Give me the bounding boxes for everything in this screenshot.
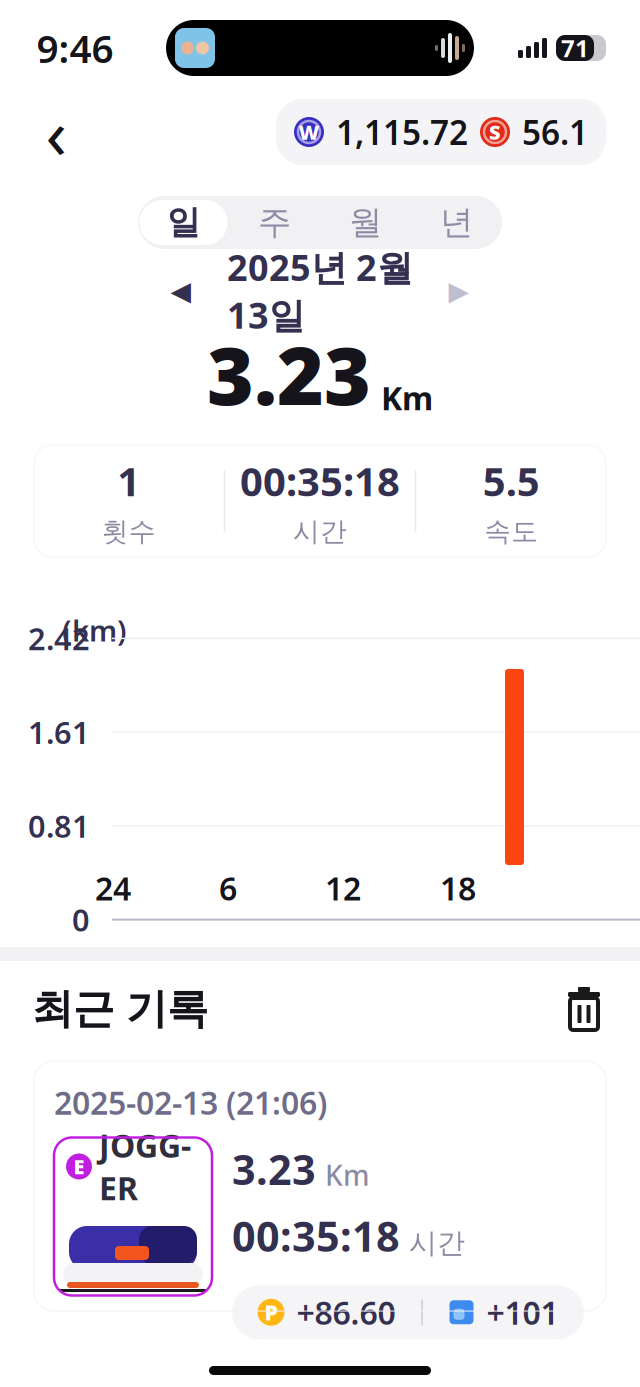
staticText: 3.23 (232, 1141, 316, 1196)
staticText: P (264, 1298, 277, 1326)
staticText: 1,115.72 (336, 110, 468, 154)
staticText: 9:46 (36, 22, 113, 74)
staticText: 3.23 (207, 321, 371, 427)
staticText: 2025년 2월 13일 (227, 243, 413, 339)
staticText: 71 (561, 32, 589, 64)
staticText: 1 (117, 454, 140, 507)
button[interactable]: 2025-02-13 (21:06) (34, 1061, 606, 1311)
button[interactable]: 일 (138, 196, 229, 249)
staticText: 2025-02-13 (21:06) (54, 1081, 327, 1123)
staticText: (km) (62, 610, 127, 649)
staticText: 일 (167, 202, 200, 243)
staticText: 시간 (409, 1226, 465, 1260)
button[interactable]: 주 (229, 196, 320, 249)
button[interactable]: Previous day (154, 269, 208, 313)
staticText: ‹ (45, 86, 66, 178)
button[interactable]: Back (28, 104, 84, 160)
staticText: E (73, 1153, 84, 1180)
staticText: 횟수 (102, 515, 156, 548)
staticText: 0.81 (28, 805, 90, 846)
button[interactable]: W (276, 99, 606, 165)
staticText: W (298, 119, 319, 145)
staticText: 6 (219, 867, 237, 909)
staticText: 5.5 (483, 454, 540, 507)
staticText: 1.61 (28, 712, 90, 752)
staticText: 주 (258, 202, 291, 243)
button[interactable]: Delete records (558, 983, 610, 1035)
staticText: 00:35:18 (232, 1208, 400, 1263)
staticText: 12 (325, 867, 361, 909)
button[interactable]: Next day (432, 269, 486, 313)
staticText: 년 (440, 202, 473, 243)
staticText: +101 (486, 1291, 558, 1333)
staticText: JOGGER (99, 1124, 191, 1209)
staticText: 월 (349, 202, 382, 243)
staticText: 2.42 (28, 618, 90, 659)
staticText: 56.1 (522, 110, 588, 154)
staticText: ▶ (448, 276, 469, 306)
staticText: 속도 (484, 515, 538, 548)
button[interactable]: 년 (411, 196, 502, 249)
staticText: Km (325, 1156, 370, 1193)
staticText: 24 (95, 867, 131, 909)
staticText: 최근 기록 (32, 984, 208, 1034)
staticText: ◀ (170, 276, 191, 306)
staticText: 00:35:18 (240, 454, 400, 507)
staticText: 시간 (293, 515, 347, 548)
staticText: +86.60 (296, 1291, 395, 1333)
staticText: Km (381, 377, 433, 419)
staticText: 0 (72, 899, 90, 940)
staticText: 18 (440, 867, 476, 909)
staticText: S (489, 119, 501, 145)
button[interactable]: 월 (320, 196, 411, 249)
